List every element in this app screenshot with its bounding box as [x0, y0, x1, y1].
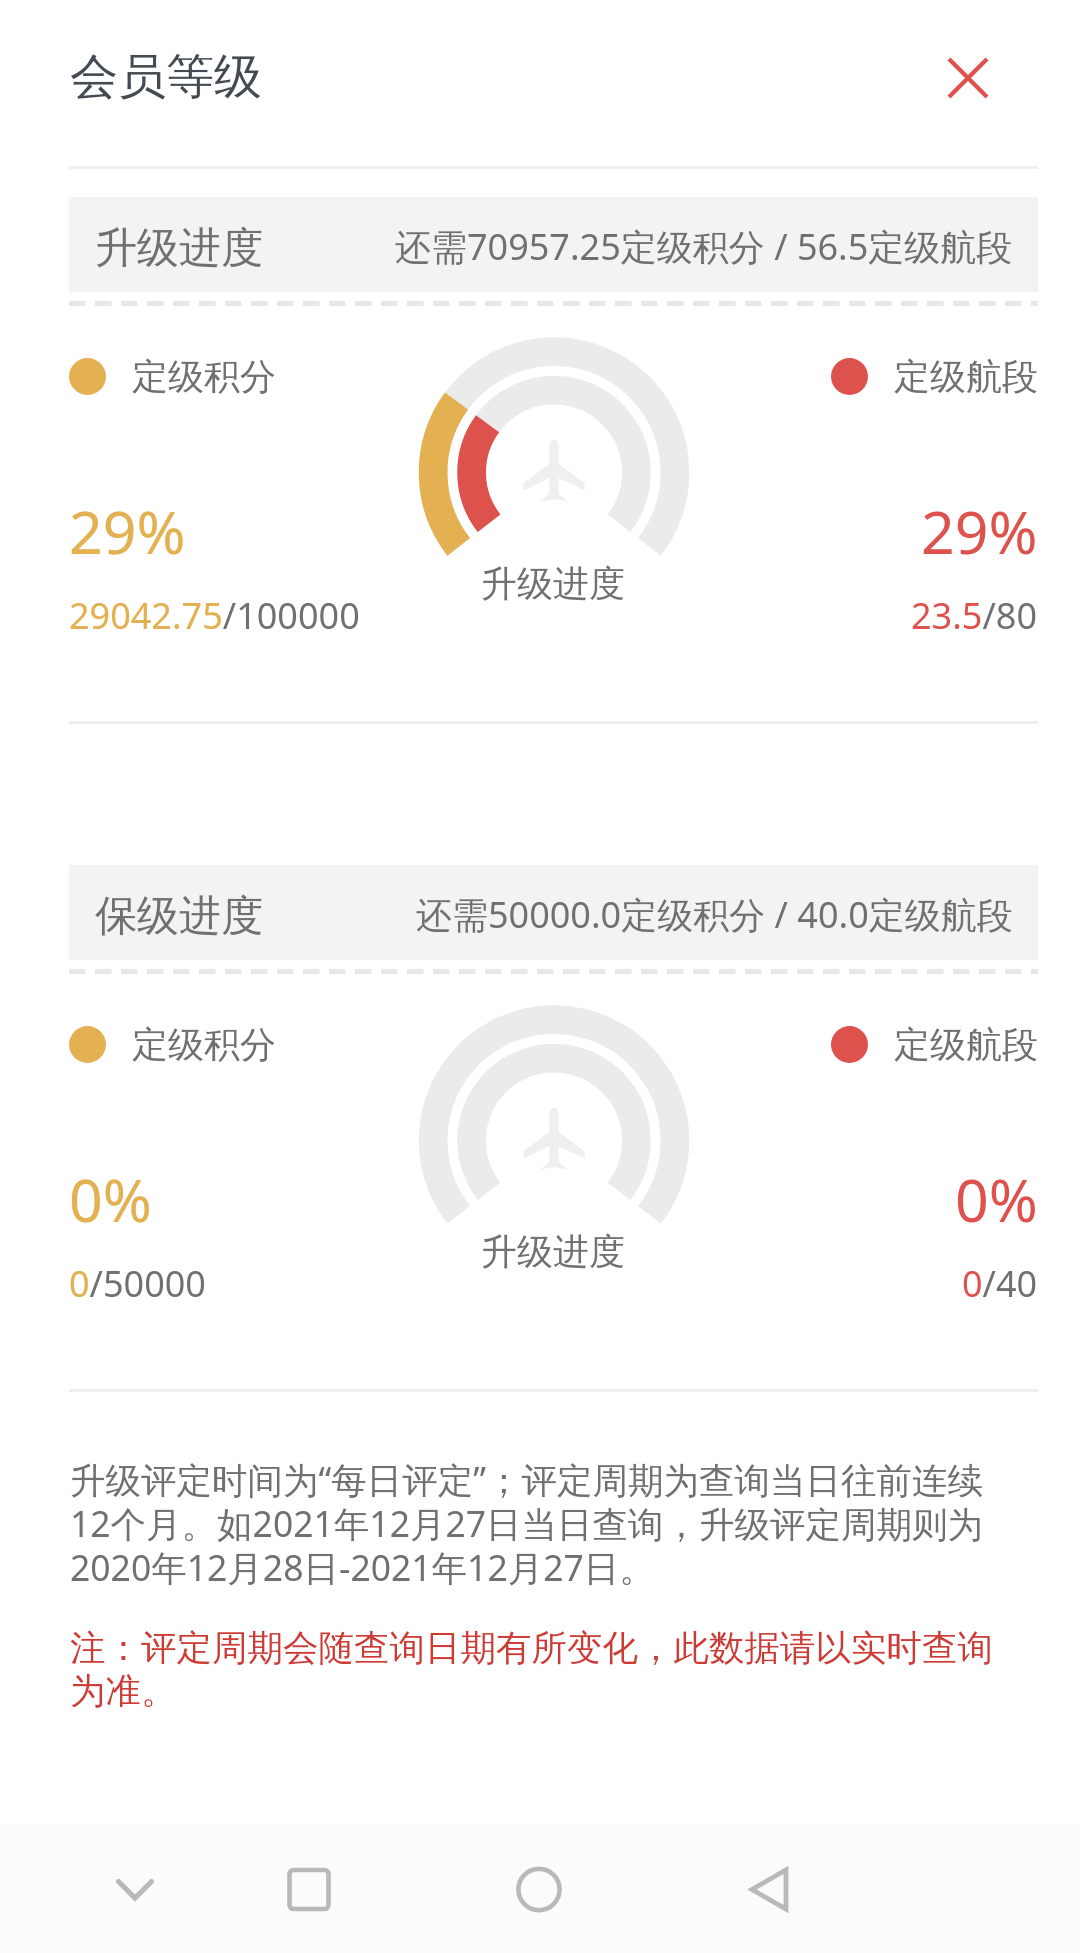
- staticText: 0%: [955, 1159, 1038, 1239]
- staticText: 还需70957.25定级积分 / 56.5定级航段: [395, 222, 1013, 271]
- staticText: 0%: [69, 1159, 152, 1239]
- staticText: 29042.75/100000: [69, 591, 360, 640]
- staticText: 23.5/80: [911, 591, 1038, 640]
- staticText: 注：评定周期会随查询日期有所变化，此数据请以实时查询为准。: [70, 1626, 1010, 1713]
- staticText: 会员等级: [70, 47, 262, 107]
- staticText: 29%: [69, 491, 186, 571]
- staticText: 升级进度: [481, 561, 625, 606]
- staticText: 升级评定时间为“每日评定”；评定周期为查询当日往前连续12个月。如2021年12…: [70, 1455, 1010, 1592]
- button[interactable]: Recent apps: [239, 1824, 379, 1953]
- staticText: 升级进度: [481, 1229, 625, 1274]
- staticText: 29%: [921, 491, 1038, 571]
- staticText: 定级航段: [894, 1022, 1038, 1067]
- staticText: 还需50000.0定级积分 / 40.0定级航段: [416, 890, 1013, 939]
- button[interactable]: Hide: [65, 1824, 205, 1953]
- staticText: 保级进度: [95, 890, 263, 943]
- staticText: 定级积分: [132, 354, 276, 399]
- button[interactable]: Close: [908, 18, 1028, 138]
- staticText: 定级积分: [132, 1022, 276, 1067]
- staticText: 0/40: [962, 1259, 1038, 1308]
- staticText: 升级进度: [95, 222, 263, 275]
- button[interactable]: Back: [699, 1824, 839, 1953]
- staticText: 定级航段: [894, 354, 1038, 399]
- button[interactable]: Home: [469, 1824, 609, 1953]
- staticText: 0/50000: [69, 1259, 206, 1308]
